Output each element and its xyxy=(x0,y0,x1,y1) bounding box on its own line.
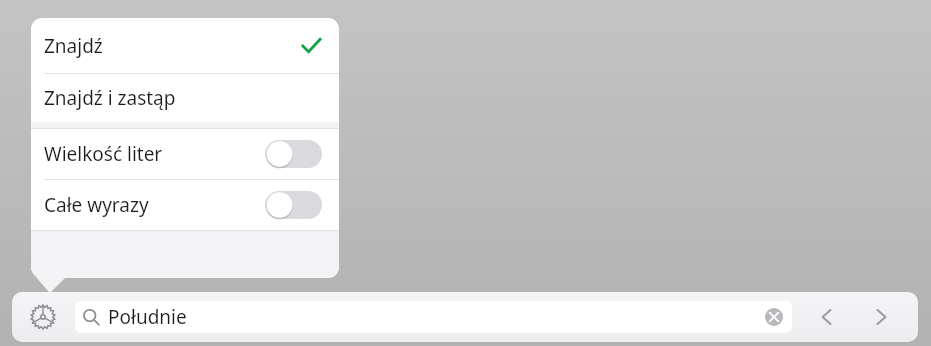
button[interactable]: Całe wyrazy xyxy=(31,180,339,230)
button[interactable]: Znajdź i zastąp xyxy=(31,74,339,122)
button[interactable]: Znajdź xyxy=(31,18,339,73)
button[interactable]: Przełącznik xyxy=(265,191,322,219)
button[interactable]: Poprzedni xyxy=(800,295,854,339)
button[interactable]: Przełącznik xyxy=(265,140,322,168)
staticText: Znajdź i zastąp xyxy=(44,85,323,111)
button[interactable]: Wyczyść xyxy=(763,306,785,328)
staticText: Południe xyxy=(108,304,763,330)
staticText: Wielkość liter xyxy=(44,141,265,167)
staticText: Całe wyrazy xyxy=(44,192,265,218)
staticText: Znajdź xyxy=(44,33,299,59)
button[interactable]: Ustawienia xyxy=(22,296,64,338)
button[interactable]: Południe xyxy=(75,301,792,333)
button[interactable]: Wielkość liter xyxy=(31,129,339,179)
button[interactable]: Następny xyxy=(854,295,908,339)
